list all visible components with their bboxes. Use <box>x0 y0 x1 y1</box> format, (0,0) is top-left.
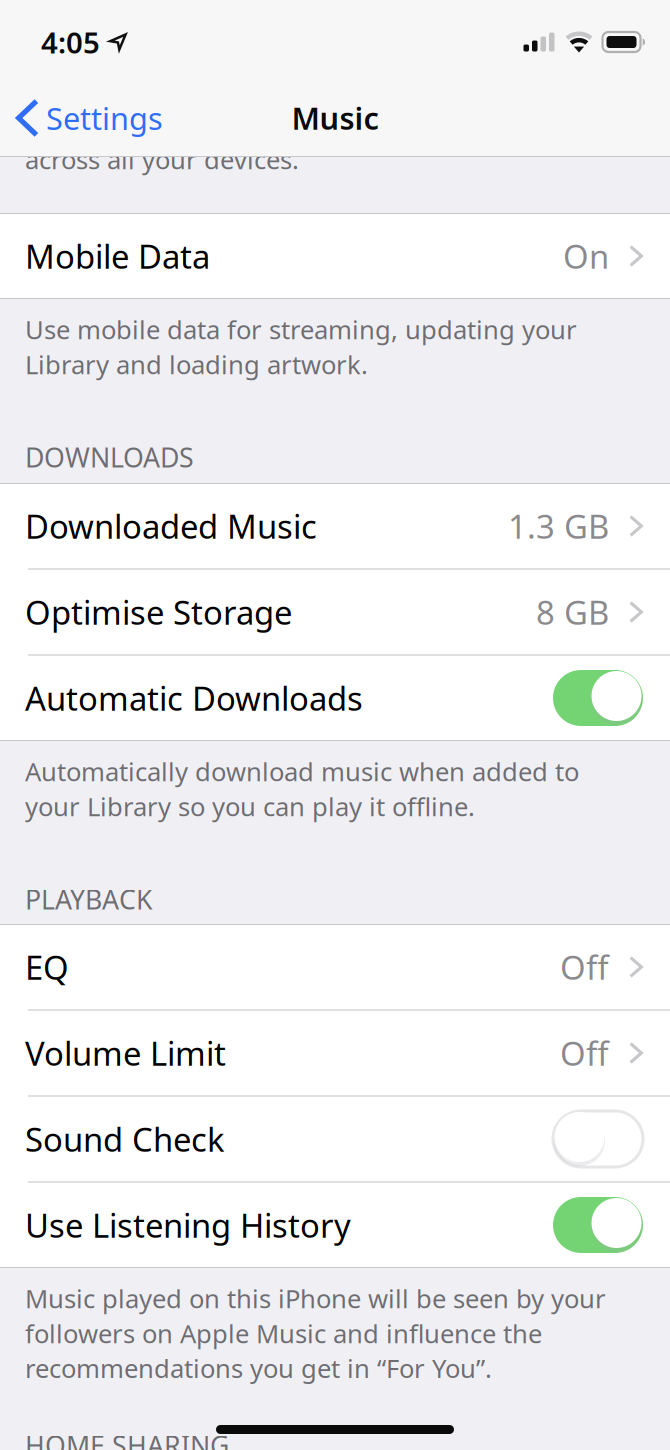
staticText: 1.3 GB <box>508 504 609 548</box>
staticText: DOWNLOADS <box>25 439 194 475</box>
staticText: Use mobile data for streaming, updating … <box>25 312 577 382</box>
button[interactable]: Automatic Downloads <box>0 656 670 740</box>
staticText: Mobile Data <box>25 234 210 278</box>
staticText: Music <box>291 97 378 139</box>
staticText: Downloaded Music <box>25 504 317 548</box>
staticText: 4:05 <box>41 22 100 62</box>
staticText: Volume Limit <box>25 1031 226 1075</box>
staticText: 8 GB <box>536 590 609 634</box>
button[interactable]: Mobile Data <box>0 214 670 298</box>
staticText: Use Listening History <box>25 1203 351 1247</box>
staticText: EQ <box>25 945 69 989</box>
staticText: HOME SHARING <box>25 1427 229 1450</box>
staticText: PLAYBACK <box>25 881 153 917</box>
staticText: Optimise Storage <box>25 590 292 634</box>
staticText: Music played on this iPhone will be seen… <box>25 1281 606 1386</box>
staticText: Off <box>560 1031 609 1075</box>
button[interactable]: Volume Limit <box>0 1011 670 1095</box>
staticText: Automatically download music when added … <box>25 754 579 824</box>
staticText: Off <box>560 945 609 989</box>
button[interactable]: Optimise Storage <box>0 570 670 654</box>
button[interactable]: Sound Check <box>0 1097 670 1181</box>
staticText: Automatic Downloads <box>25 676 363 720</box>
staticText: Sound Check <box>25 1117 225 1161</box>
staticText: Settings <box>46 97 163 139</box>
staticText: On <box>563 234 609 278</box>
staticText: across all your devices. <box>25 142 299 177</box>
button[interactable]: Downloaded Music <box>0 484 670 568</box>
button[interactable]: EQ <box>0 925 670 1009</box>
button[interactable]: Settings <box>0 0 177 147</box>
button[interactable]: Use Listening History <box>0 1183 670 1267</box>
